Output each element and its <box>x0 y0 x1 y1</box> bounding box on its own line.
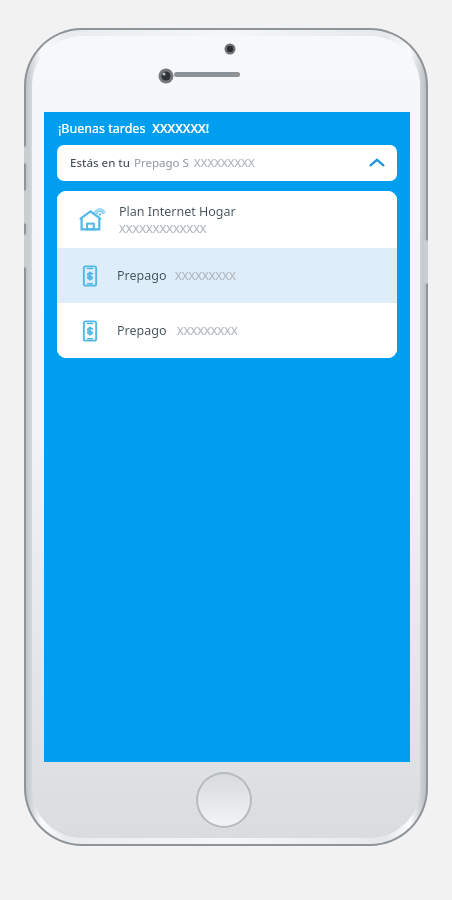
other: Prepaid line <box>79 265 101 287</box>
staticText: Prepago <box>117 322 167 339</box>
other: Collapse <box>367 153 387 173</box>
staticText: Prepago <box>117 267 167 284</box>
staticText: Plan Internet Hogar <box>119 203 236 220</box>
button[interactable]: Home <box>196 772 252 828</box>
staticText: XXXXXXX! <box>149 120 210 137</box>
button[interactable]: Prepaid line <box>79 248 383 303</box>
staticText: Estás en tu <box>70 155 130 171</box>
staticText: XXXXXXXXX <box>194 155 255 171</box>
staticText: XXXXXXXXX <box>177 323 238 339</box>
staticText: XXXXXXXXXXXXX <box>119 221 207 237</box>
other: Prepaid line <box>79 320 101 342</box>
button[interactable]: Home internet plan <box>79 191 383 248</box>
staticText: XXXXXXXXX <box>175 268 236 284</box>
staticText: ¡Buenas tardes <box>58 120 149 137</box>
button[interactable]: Prepaid line <box>79 303 383 358</box>
button[interactable]: Estás en tu <box>57 145 397 181</box>
other: Home internet plan <box>79 207 105 233</box>
staticText: Prepago S <box>134 155 189 171</box>
